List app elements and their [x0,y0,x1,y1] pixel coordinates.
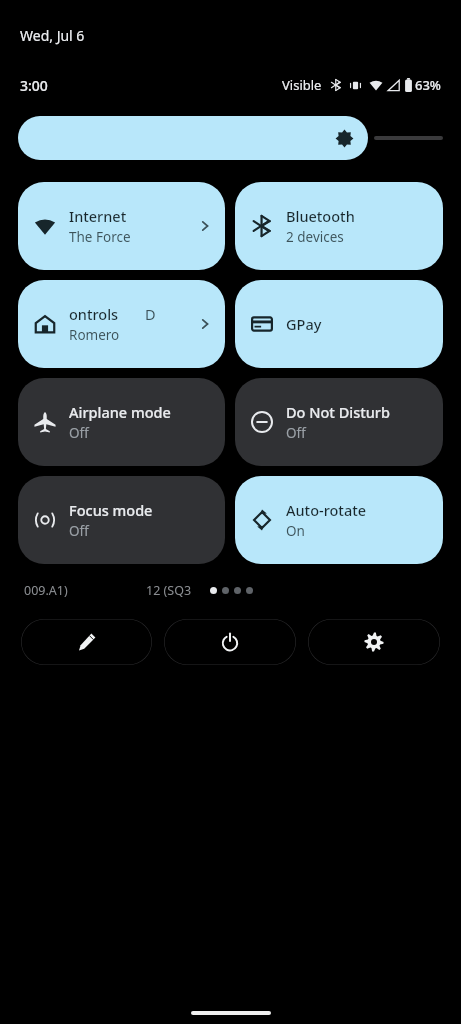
staticText: Visible [282,76,322,94]
staticText: Off [69,522,89,540]
staticText: GPay [286,314,322,334]
staticText: Off [69,424,89,442]
button[interactable]: Settings [308,619,440,665]
staticText: Wed, Jul 6 [20,26,85,45]
staticText: Do Not Disturb [286,402,390,422]
staticText: 12 (SQ3 [146,582,192,599]
staticText: Off [286,424,306,442]
button[interactable]: Brightness [18,116,368,160]
staticText: Airplane mode [69,402,171,422]
button[interactable]: Power [164,619,296,665]
button[interactable]: Do Not Disturb [235,378,443,466]
staticText: On [286,522,305,540]
button[interactable]: Auto-rotate [235,476,443,564]
staticText: D [145,304,156,324]
button[interactable]: Airplane mode [18,378,225,466]
staticText: Romero [69,326,120,344]
button[interactable]: Home controls [18,280,225,368]
staticText: ontrols [69,304,119,324]
button[interactable]: Focus mode [18,476,225,564]
staticText: 009.A1) [24,582,68,599]
staticText: 63% [415,76,441,94]
button[interactable]: Edit [21,619,152,665]
staticText: Focus mode [69,500,153,520]
staticText: 2 devices [286,228,344,246]
button[interactable]: Bluetooth [235,182,443,270]
staticText: The Force [69,228,131,246]
staticText: Internet [69,206,127,226]
button[interactable]: Internet [18,182,225,270]
staticText: 3:00 [20,76,48,95]
staticText: Auto-rotate [286,500,367,520]
button[interactable]: GPay [235,280,443,368]
staticText: Bluetooth [286,206,355,226]
